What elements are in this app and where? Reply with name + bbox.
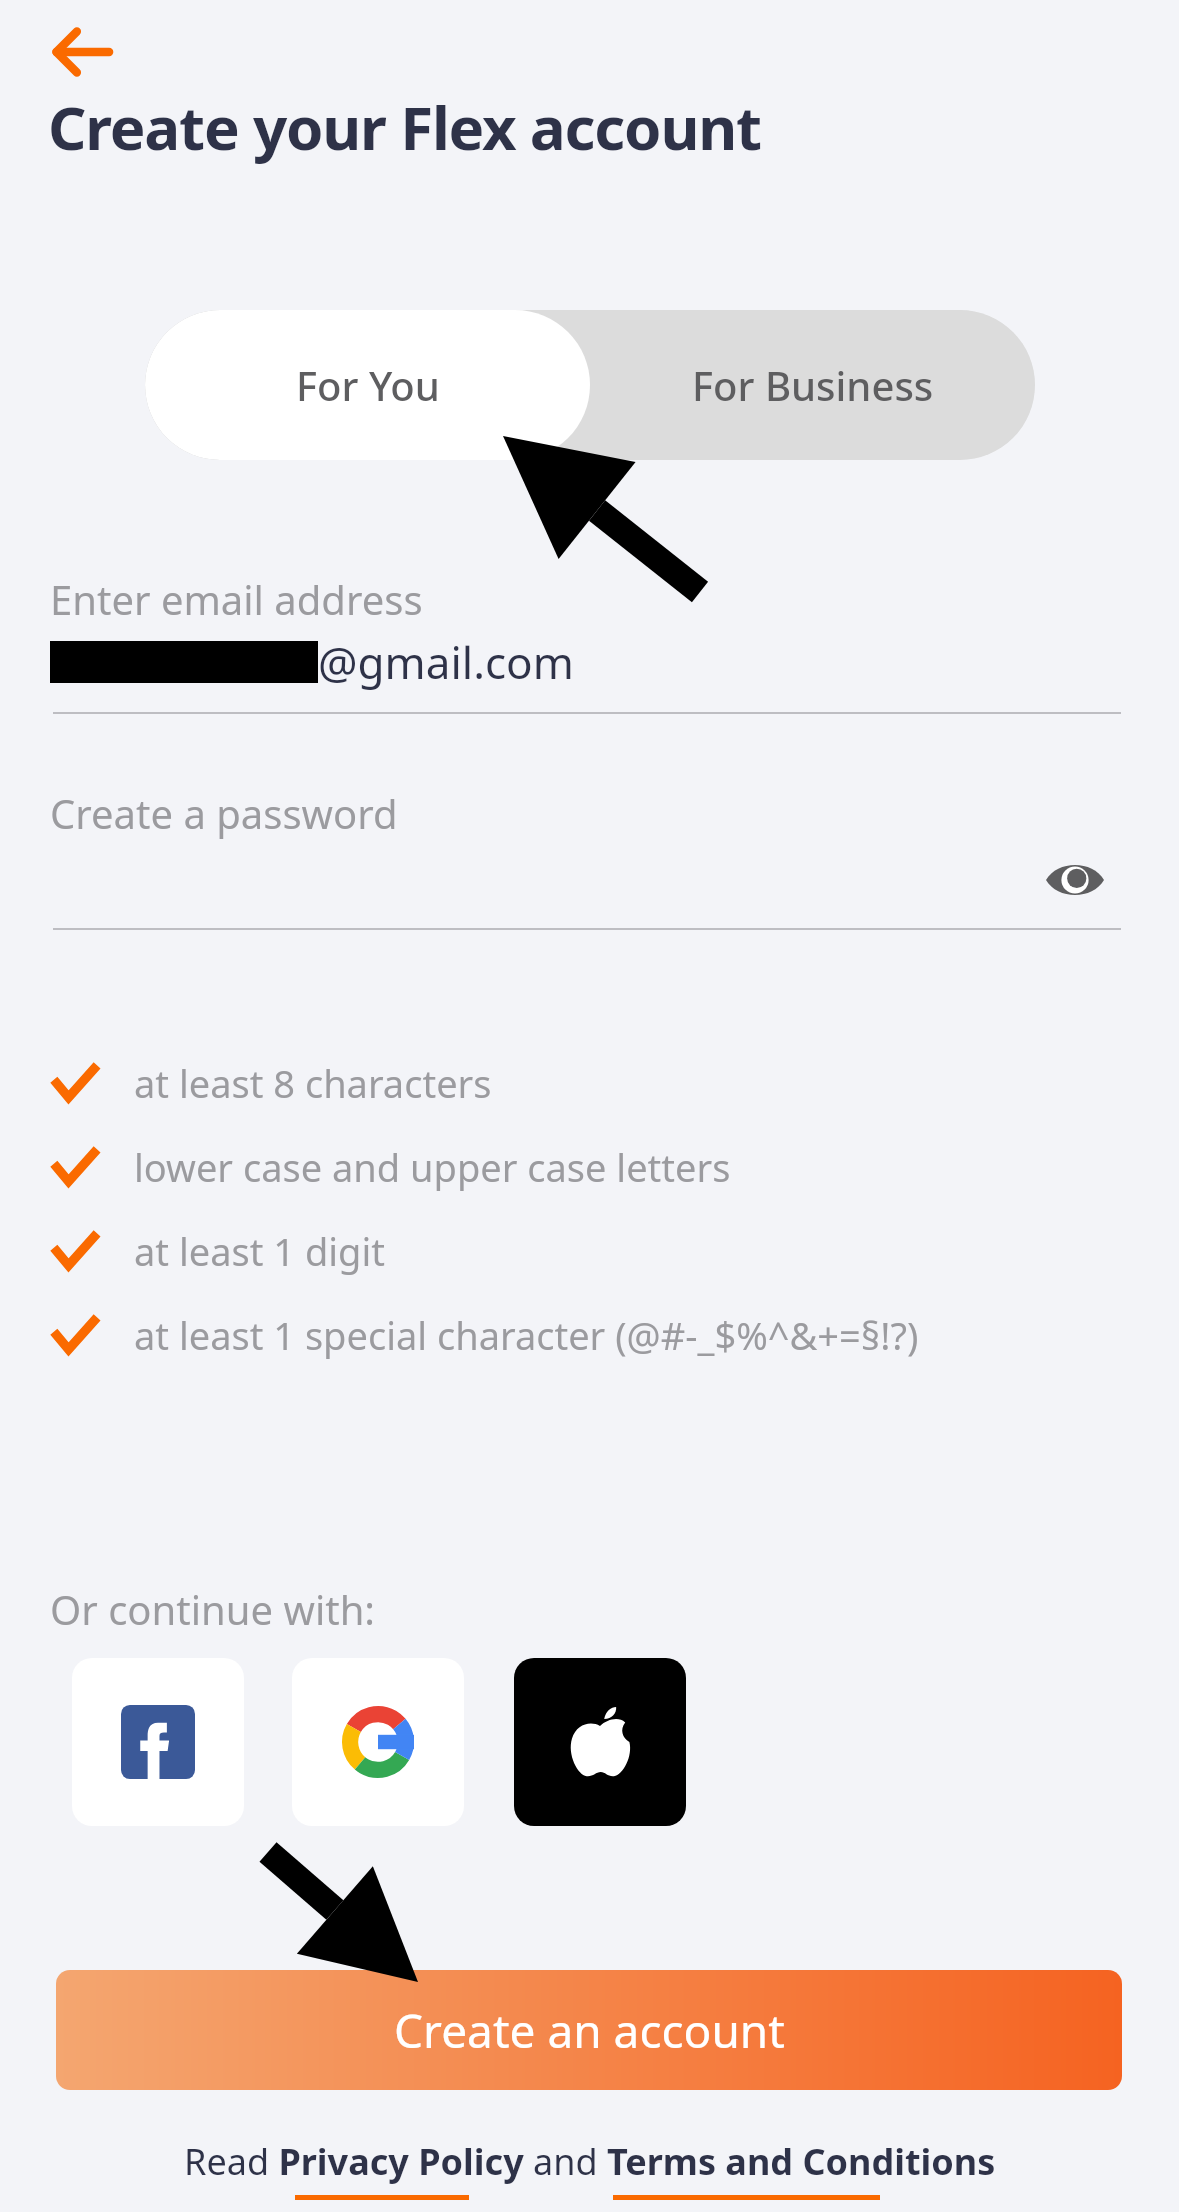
staticText: at least 1 special character (@#-_$%^&+=… [134, 1309, 919, 1361]
button[interactable]: Sign in with Google [292, 1658, 464, 1826]
staticText: Create a password [50, 786, 398, 840]
button[interactable]: Show password [1030, 840, 1120, 920]
staticText: Create an account [394, 1999, 785, 2062]
button[interactable]: Read Privacy Policy and Terms and Condit… [184, 2137, 996, 2186]
staticText: lower case and upper case letters [134, 1141, 731, 1193]
button[interactable]: Sign in with Apple [514, 1658, 686, 1826]
button[interactable]: Create an account [56, 1970, 1122, 2090]
button[interactable]: Back [40, 18, 120, 86]
staticText: Create your Flex account [48, 86, 761, 168]
staticText: Enter email address [50, 572, 423, 626]
button[interactable]: For You [145, 310, 590, 460]
button[interactable]: For Business [590, 310, 1035, 460]
staticText: at least 1 digit [134, 1225, 385, 1277]
staticText: Or continue with: [50, 1582, 376, 1636]
staticText: @gmail.com [318, 632, 574, 692]
staticText: For Business [692, 358, 934, 412]
staticText: Read Privacy Policy and Terms and Condit… [184, 2137, 996, 2186]
staticText: at least 8 characters [134, 1057, 492, 1109]
button[interactable]: Sign in with Facebook [72, 1658, 244, 1826]
staticText: For You [296, 358, 440, 412]
